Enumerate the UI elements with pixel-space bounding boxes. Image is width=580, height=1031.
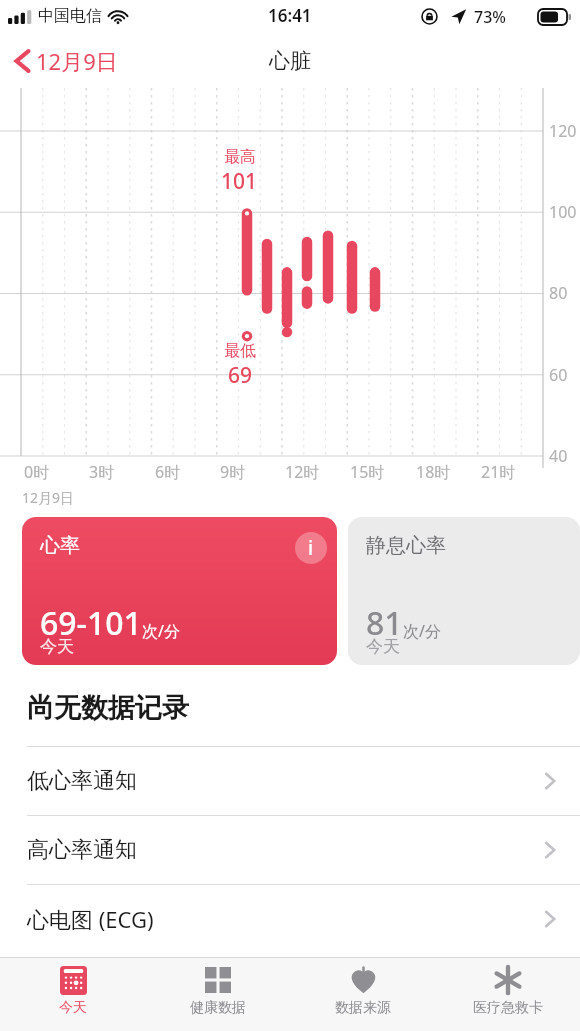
button[interactable]: 数据来源 (290, 958, 435, 1031)
staticText: 数据来源 (335, 999, 391, 1017)
staticText: 静息心率 (366, 533, 446, 558)
staticText: 40 (549, 445, 568, 467)
staticText: 今天 (366, 636, 400, 657)
staticText: 今天 (59, 999, 87, 1017)
staticText: 12月9日 (22, 488, 75, 507)
staticText: 次/分 (142, 620, 180, 642)
staticText: 心电图 (ECG) (27, 904, 544, 934)
staticText: 最低 (224, 341, 256, 361)
button[interactable]: 高心率通知 (0, 816, 580, 884)
staticText: 医疗急救卡 (473, 999, 543, 1017)
staticText: 次/分 (403, 620, 441, 642)
staticText: 15时 (350, 461, 385, 483)
staticText: 16:41 (268, 4, 312, 27)
staticText: 高心率通知 (27, 836, 544, 864)
button[interactable]: Info (295, 532, 327, 564)
staticText: 73% (474, 6, 506, 28)
staticText: 120 (549, 120, 577, 142)
button[interactable]: 今天 (0, 958, 145, 1031)
staticText: 心率 (40, 533, 80, 558)
button[interactable]: 心率 (22, 517, 337, 665)
staticText: 健康数据 (190, 999, 246, 1017)
button[interactable]: 静息心率 (348, 517, 580, 665)
staticText: 心脏 (269, 48, 311, 74)
staticText: 18时 (416, 461, 451, 483)
staticText: 101 (221, 167, 258, 196)
staticText: 100 (549, 201, 577, 223)
staticText: 6时 (155, 461, 181, 483)
staticText: 81 (366, 601, 403, 645)
button[interactable]: 医疗急救卡 (435, 958, 580, 1031)
staticText: 69-101 (40, 601, 142, 645)
staticText: i (308, 535, 314, 561)
staticText: 尚无数据记录 (27, 691, 189, 725)
button[interactable]: 低心率通知 (0, 747, 580, 815)
staticText: 3时 (89, 461, 115, 483)
staticText: 60 (549, 364, 568, 386)
staticText: 今天 (40, 636, 74, 657)
button[interactable]: 12月9日 (0, 40, 130, 82)
staticText: 9时 (220, 461, 246, 483)
button[interactable]: 心电图 (ECG) (0, 885, 580, 953)
button[interactable]: 健康数据 (145, 958, 290, 1031)
staticText: 0时 (24, 461, 50, 483)
staticText: 低心率通知 (27, 767, 544, 795)
staticText: 12时 (285, 461, 320, 483)
staticText: 69 (228, 361, 253, 390)
staticText: 12月9日 (36, 46, 118, 76)
staticText: 21时 (481, 461, 516, 483)
staticText: 最高 (224, 147, 256, 167)
staticText: 中国电信 (38, 6, 102, 26)
staticText: 80 (549, 282, 568, 304)
